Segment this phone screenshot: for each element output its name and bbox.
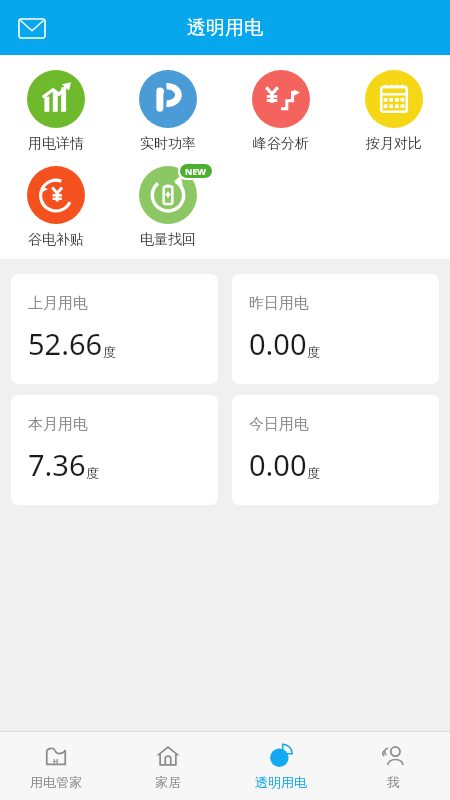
staticText: 透明用电 [255, 774, 307, 790]
staticText: 家居 [155, 774, 181, 790]
staticText: H [53, 757, 59, 767]
button[interactable]: 按月对比 [337, 64, 450, 153]
staticText: 本月用电 [28, 415, 88, 434]
button[interactable]: 用电管家 [0, 732, 112, 800]
button[interactable]: 我 [337, 732, 450, 800]
button[interactable]: 家居 [112, 732, 224, 800]
other: 透明用电 [267, 742, 295, 770]
staticText: 今日用电 [249, 415, 309, 434]
staticText: 度 [307, 344, 320, 360]
button[interactable]: 实时功率 [112, 64, 224, 153]
staticText: 7.36 [28, 445, 86, 484]
staticText: 0.00 [249, 445, 307, 484]
other: 家居 [154, 742, 182, 770]
button[interactable]: 昨日用电 [232, 274, 439, 384]
staticText: NEW [185, 165, 207, 177]
button[interactable]: NEW [112, 160, 224, 249]
staticText: 上月用电 [28, 294, 88, 313]
button[interactable]: 透明用电 [224, 732, 337, 800]
staticText: 52.66 [28, 324, 103, 363]
button[interactable]: 谷电补贴 [0, 160, 112, 249]
button[interactable]: Messages [12, 8, 52, 48]
staticText: 实时功率 [140, 135, 196, 153]
staticText: 电量找回 [140, 231, 196, 249]
button[interactable]: 今日用电 [232, 395, 439, 505]
button[interactable]: 用电详情 [0, 64, 112, 153]
staticText: 度 [307, 465, 320, 481]
other: 用电管家 [42, 742, 70, 770]
staticText: 按月对比 [366, 135, 422, 153]
staticText: 度 [86, 465, 99, 481]
staticText: 我 [387, 774, 400, 790]
staticText: 用电详情 [28, 135, 84, 153]
staticText: 峰谷分析 [253, 135, 309, 153]
button[interactable]: 峰谷分析 [224, 64, 337, 153]
staticText: 度 [103, 344, 116, 360]
staticText: 用电管家 [30, 774, 82, 790]
staticText: 透明用电 [187, 16, 263, 40]
other: 我 [380, 742, 408, 770]
staticText: 谷电补贴 [28, 231, 84, 249]
staticText: 昨日用电 [249, 294, 309, 313]
button[interactable]: 本月用电 [11, 395, 218, 505]
staticText: 0.00 [249, 324, 307, 363]
button[interactable]: 上月用电 [11, 274, 218, 384]
